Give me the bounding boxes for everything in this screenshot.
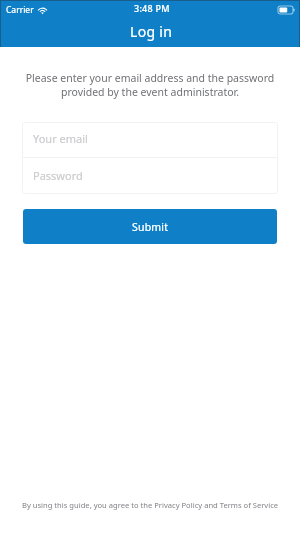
staticText: Log in: [130, 22, 173, 41]
staticText: Carrier: [6, 4, 34, 16]
button[interactable]: Your email: [22, 122, 278, 157]
button[interactable]: By using this guide, you agree to the Pr…: [18, 500, 282, 510]
staticText: Please enter your email address and the …: [24, 71, 276, 99]
button[interactable]: Submit: [23, 209, 277, 244]
staticText: Password: [33, 168, 83, 183]
staticText: Your email: [33, 131, 88, 146]
button[interactable]: Password: [22, 158, 278, 194]
staticText: 3:48 PM: [134, 2, 170, 14]
staticText: Submit: [132, 220, 169, 234]
